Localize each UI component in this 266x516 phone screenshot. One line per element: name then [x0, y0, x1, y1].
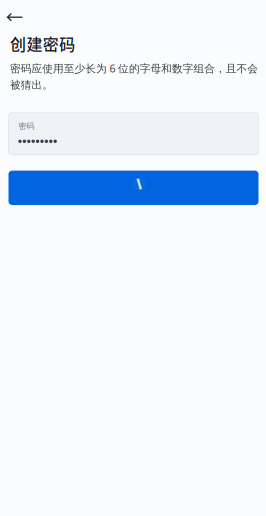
staticText: 创建密码	[10, 32, 75, 55]
staticText: 密码	[18, 121, 34, 131]
staticText: 密码应使用至少长为 6 位的字母和数字组合，且不会	[10, 61, 258, 75]
button[interactable]: Continue	[8, 171, 258, 205]
button[interactable]: 密码	[8, 113, 258, 155]
button[interactable]: Back	[0, 4, 30, 30]
staticText: 被猜出。	[10, 78, 53, 91]
